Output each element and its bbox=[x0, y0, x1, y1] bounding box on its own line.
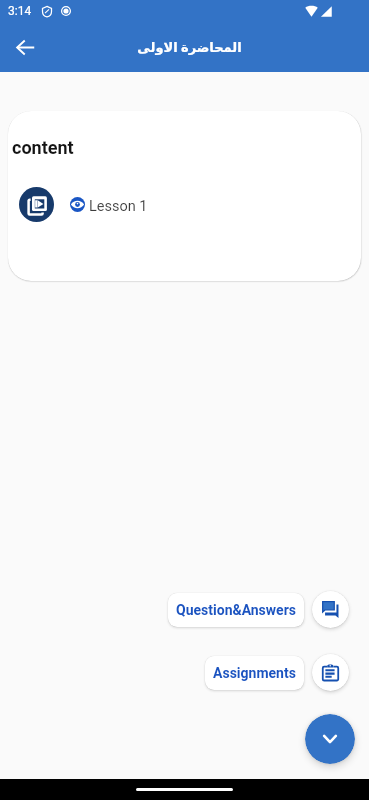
button[interactable]: Question&Answers bbox=[312, 591, 349, 628]
button[interactable]: Question&Answers bbox=[168, 593, 304, 627]
staticText: المحاضرة الاولى bbox=[137, 38, 242, 56]
button[interactable]: Lesson 1 bbox=[19, 187, 361, 222]
button[interactable]: Back bbox=[5, 27, 45, 67]
button[interactable]: Close menu bbox=[305, 714, 355, 764]
button[interactable]: Assignments bbox=[312, 654, 349, 691]
staticText: Assignments bbox=[213, 665, 296, 681]
staticText: Question&Answers bbox=[176, 602, 296, 618]
staticText: content bbox=[12, 137, 74, 158]
staticText: Lesson 1 bbox=[89, 198, 148, 215]
button[interactable]: Assignments bbox=[205, 656, 304, 690]
staticText: 3:14 bbox=[8, 4, 32, 18]
